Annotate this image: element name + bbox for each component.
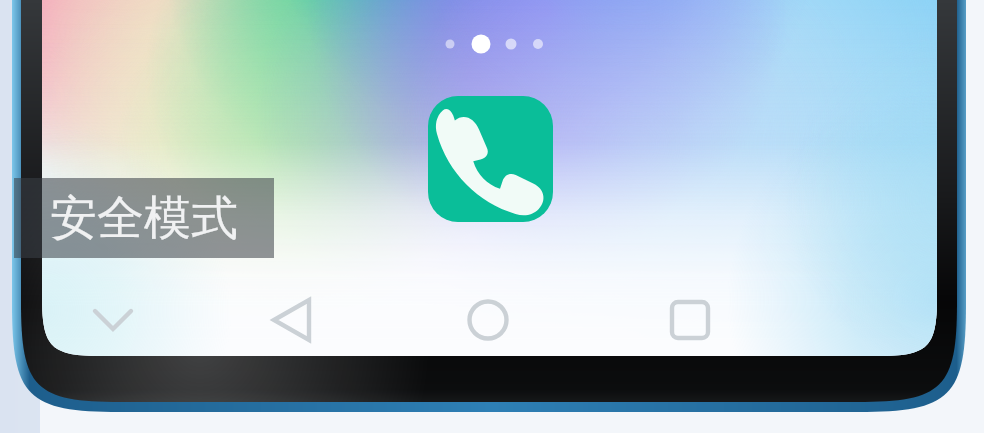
button[interactable]: 安全模式 <box>14 178 274 258</box>
staticText: 安全模式 <box>50 189 238 248</box>
button[interactable]: Phone <box>428 96 553 222</box>
